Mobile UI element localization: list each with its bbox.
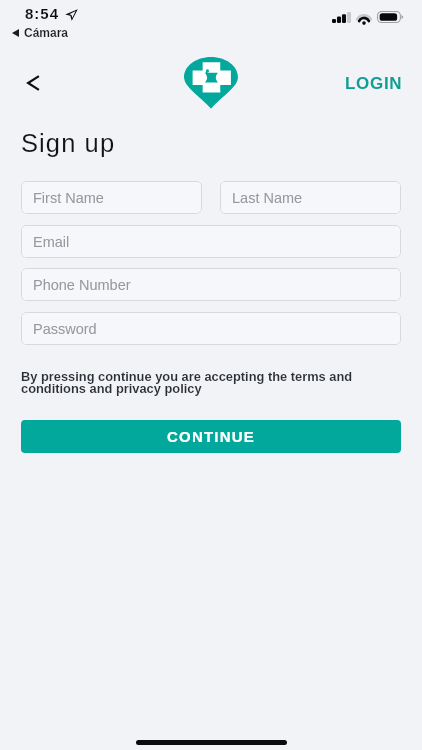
staticText: Cámara [24, 26, 69, 39]
staticText: By pressing continue you are accepting t… [21, 369, 405, 396]
staticText: Email [33, 234, 70, 250]
staticText: Phone Number [33, 277, 131, 293]
staticText: 8:54 [25, 5, 60, 22]
button[interactable]: LOGIN [335, 62, 412, 104]
staticText: First Name [33, 190, 104, 206]
staticText: CONTINUE [167, 428, 255, 445]
staticText: Last Name [232, 190, 303, 206]
button[interactable]: CONTINUE [21, 420, 401, 453]
other: Pharmacy logo [184, 57, 238, 109]
staticText: Password [33, 321, 97, 337]
button[interactable]: Password [21, 312, 401, 345]
staticText: LOGIN [345, 74, 403, 93]
staticText: Sign up [21, 129, 116, 157]
button[interactable]: Back [13, 62, 54, 103]
button[interactable]: Last Name [220, 181, 401, 214]
button[interactable]: First Name [21, 181, 202, 214]
button[interactable]: Email [21, 225, 401, 258]
button[interactable]: Phone Number [21, 268, 401, 301]
